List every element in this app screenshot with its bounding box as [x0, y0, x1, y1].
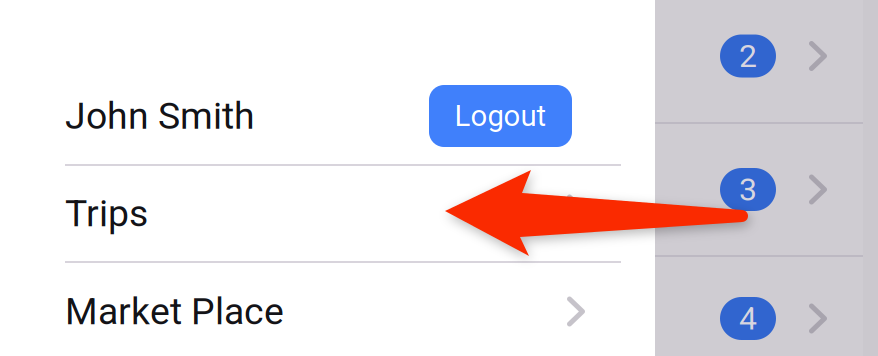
- button[interactable]: Trips: [0, 166, 655, 261]
- staticText: Logout: [454, 99, 546, 133]
- staticText: 4: [739, 300, 757, 337]
- staticText: John Smith: [65, 94, 255, 138]
- staticText: Market Place: [65, 290, 284, 333]
- button[interactable]: Open item 3: [655, 124, 878, 255]
- button[interactable]: John Smith: [0, 68, 655, 164]
- button[interactable]: Open item 4: [655, 257, 878, 356]
- staticText: Trips: [65, 192, 148, 235]
- staticText: 2: [739, 37, 757, 75]
- staticText: 3: [739, 171, 757, 208]
- button[interactable]: Open item 2: [655, 0, 878, 122]
- button[interactable]: Logout: [429, 85, 572, 147]
- button[interactable]: Market Place: [0, 263, 655, 356]
